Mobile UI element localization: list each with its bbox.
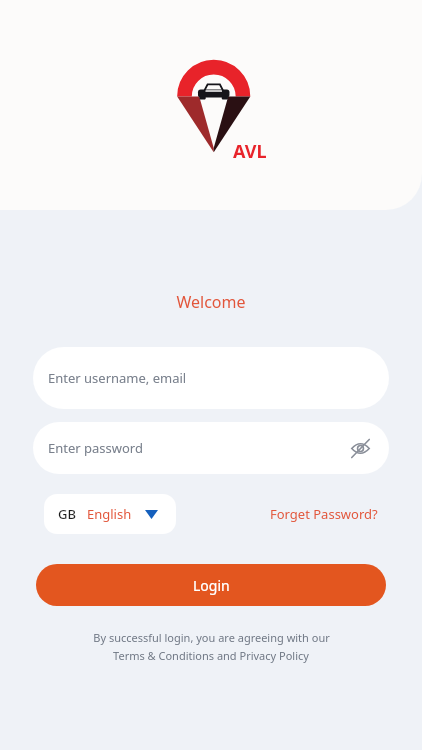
button[interactable]: Forget Password? — [270, 505, 378, 523]
staticText: Forget Password? — [270, 505, 378, 523]
button[interactable]: Login — [36, 564, 386, 606]
button[interactable]: Enter password — [33, 422, 389, 474]
staticText: By successful login, you are agreeing wi… — [93, 630, 330, 645]
staticText: Login — [193, 576, 230, 595]
staticText: AVL — [233, 139, 267, 164]
staticText: Enter password — [48, 439, 143, 457]
staticText: GB — [58, 505, 76, 523]
staticText: Terms & Conditions and Privacy Policy — [113, 648, 309, 663]
button[interactable]: Toggle password visibility — [347, 435, 373, 461]
staticText: Enter username, email — [48, 369, 187, 387]
button[interactable]: Enter username, email — [33, 347, 389, 409]
button[interactable]: GB — [44, 494, 176, 534]
staticText: Welcome — [176, 291, 246, 313]
staticText: English — [87, 505, 132, 523]
button[interactable]: Terms & Conditions and Privacy Policy — [113, 648, 309, 663]
